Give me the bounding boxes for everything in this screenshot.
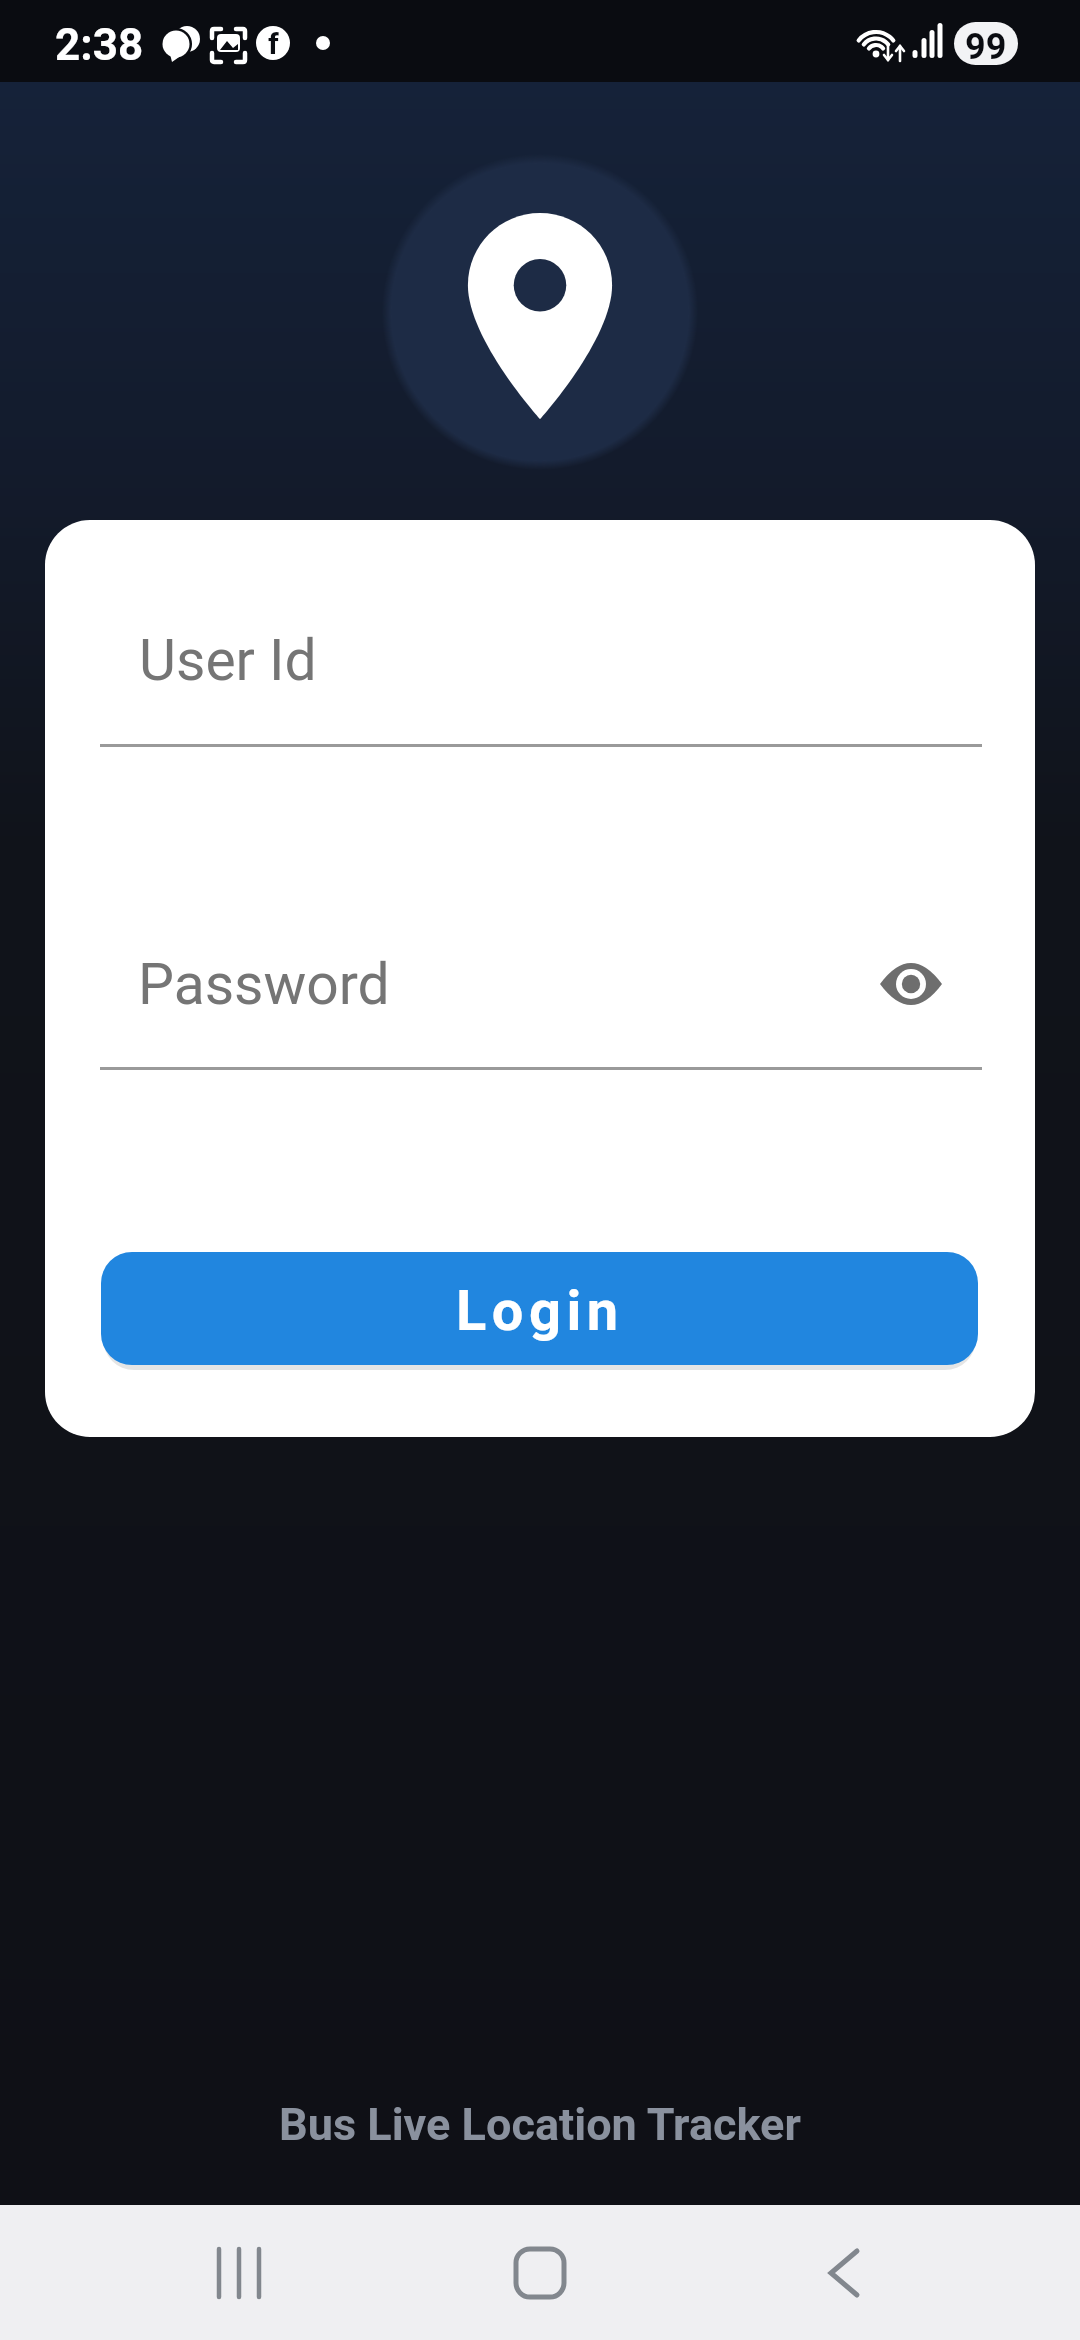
button[interactable] [360,2205,720,2340]
button[interactable]: Password [100,928,982,1067]
staticText: User Id [139,627,317,694]
button[interactable] [0,2205,360,2340]
button[interactable] [876,949,946,1019]
button[interactable]: Login [101,1252,978,1365]
staticText: 2:38 [55,19,144,71]
button[interactable]: User Id [100,605,982,744]
staticText: 99 [965,26,1007,68]
staticText: f [268,26,279,61]
staticText: Password [138,951,390,1018]
staticText: Login [456,1278,624,1344]
button[interactable] [720,2205,1080,2340]
staticText: Bus Live Location Tracker [279,2098,801,2151]
